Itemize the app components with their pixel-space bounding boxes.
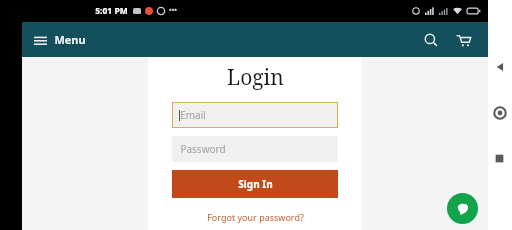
staticText: Forgot your password? bbox=[207, 211, 304, 223]
staticText: Email bbox=[180, 108, 206, 122]
button[interactable]: Search bbox=[418, 27, 444, 53]
staticText: 5:01 PM bbox=[95, 5, 128, 17]
button[interactable]: Menu bbox=[34, 32, 86, 47]
button[interactable]: Email bbox=[172, 102, 338, 128]
staticText: Login bbox=[227, 63, 284, 92]
button[interactable]: Password bbox=[172, 136, 338, 162]
staticText: Sign In bbox=[238, 177, 273, 191]
button[interactable]: Back bbox=[493, 60, 507, 74]
staticText: Menu bbox=[54, 32, 86, 47]
button[interactable]: Shopping cart bbox=[450, 27, 476, 53]
staticText: ••• bbox=[169, 6, 177, 16]
button[interactable]: Home bbox=[493, 106, 507, 120]
staticText: Password bbox=[180, 142, 226, 156]
button[interactable]: Recent apps bbox=[494, 153, 505, 164]
button[interactable]: Sign In bbox=[172, 170, 338, 198]
button[interactable]: Chat bbox=[447, 193, 478, 224]
button[interactable]: Forgot your password? bbox=[203, 209, 308, 225]
